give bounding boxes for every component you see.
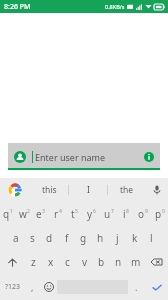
- button[interactable]: k: [126, 226, 143, 250]
- button[interactable]: m: [127, 250, 144, 274]
- staticText: 1: [10, 208, 13, 215]
- staticText: .: [135, 281, 138, 293]
- button[interactable]: x: [42, 250, 59, 274]
- button[interactable]: i: [117, 202, 134, 226]
- staticText: 9: [145, 208, 148, 215]
- button[interactable]: e: [32, 202, 49, 226]
- staticText: j: [116, 231, 119, 245]
- staticText: v: [82, 255, 88, 269]
- staticText: 0: [162, 208, 165, 215]
- staticText: ?123: [5, 282, 21, 292]
- button[interactable]: Backspace: [144, 250, 168, 274]
- staticText: 8:26 PM: [4, 2, 31, 12]
- button[interactable]: g: [75, 226, 92, 250]
- staticText: a: [13, 231, 19, 245]
- button[interactable]: l: [143, 226, 160, 250]
- button[interactable]: y: [83, 202, 100, 226]
- staticText: g: [80, 231, 87, 245]
- staticText: q: [3, 207, 10, 221]
- button[interactable]: Google: [0, 178, 30, 202]
- staticText: r: [54, 207, 59, 221]
- button[interactable]: .: [128, 274, 145, 300]
- staticText: 8: [126, 208, 129, 215]
- staticText: m: [131, 255, 141, 269]
- staticText: the: [120, 184, 134, 196]
- button[interactable]: ?123: [0, 274, 25, 300]
- button[interactable]: Shift: [0, 250, 25, 274]
- staticText: 6: [93, 208, 96, 215]
- button[interactable]: f: [58, 226, 75, 250]
- button[interactable]: c: [59, 250, 76, 274]
- button[interactable]: s: [24, 226, 41, 250]
- button[interactable]: t: [66, 202, 83, 226]
- staticText: w: [19, 207, 27, 221]
- staticText: 0.8KB/s: [105, 3, 125, 10]
- staticText: l: [150, 231, 153, 245]
- staticText: n: [115, 255, 122, 269]
- button[interactable]: h: [92, 226, 109, 250]
- button[interactable]: n: [110, 250, 127, 274]
- staticText: o: [138, 207, 145, 221]
- staticText: y: [87, 207, 93, 221]
- staticText: s: [30, 231, 35, 245]
- button[interactable]: Emoji: [40, 274, 57, 300]
- staticText: 4: [59, 208, 62, 215]
- staticText: i: [123, 207, 126, 221]
- staticText: ,: [31, 281, 34, 293]
- button[interactable]: j: [109, 226, 126, 250]
- button[interactable]: User: [8, 143, 160, 170]
- staticText: z: [31, 255, 36, 269]
- staticText: t: [71, 207, 75, 221]
- button[interactable]: ,: [25, 274, 40, 300]
- staticText: p: [155, 207, 162, 221]
- button[interactable]: w: [16, 202, 32, 226]
- staticText: 7: [111, 208, 114, 215]
- staticText: b: [98, 255, 105, 269]
- staticText: e: [36, 207, 42, 221]
- button[interactable]: b: [93, 250, 110, 274]
- other: User: [14, 151, 26, 163]
- button[interactable]: Voice input: [146, 178, 168, 202]
- staticText: f: [65, 231, 69, 245]
- button[interactable]: d: [41, 226, 58, 250]
- staticText: x: [48, 255, 54, 269]
- button[interactable]: p: [151, 202, 168, 226]
- button[interactable]: Enter: [145, 274, 168, 300]
- staticText: u: [104, 207, 111, 221]
- staticText: d: [46, 231, 53, 245]
- button[interactable]: q: [0, 202, 16, 226]
- staticText: h: [97, 231, 104, 245]
- button[interactable]: a: [7, 226, 24, 250]
- staticText: 5: [75, 208, 78, 215]
- button[interactable]: the: [108, 178, 146, 202]
- button[interactable]: z: [25, 250, 42, 274]
- staticText: c: [65, 255, 70, 269]
- staticText: 2: [27, 208, 30, 215]
- staticText: Enter user name: [35, 151, 106, 163]
- staticText: k: [132, 231, 138, 245]
- button[interactable]: v: [76, 250, 93, 274]
- button[interactable]: o: [134, 202, 151, 226]
- staticText: I: [87, 184, 90, 196]
- button[interactable]: r: [49, 202, 66, 226]
- staticText: this: [42, 184, 57, 196]
- other: Info: [144, 152, 154, 162]
- button[interactable]: I: [69, 178, 107, 202]
- button[interactable]: this: [30, 178, 68, 202]
- staticText: 3: [42, 208, 45, 215]
- button[interactable]: u: [100, 202, 117, 226]
